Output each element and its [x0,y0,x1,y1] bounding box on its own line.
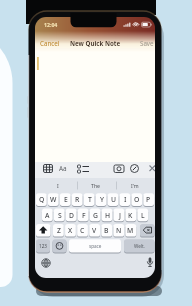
staticText: W [50,195,57,204]
button[interactable]: O [131,193,142,206]
button[interactable]: K [125,209,136,222]
staticText: F [82,211,86,220]
button[interactable]: F [78,209,89,222]
button[interactable]: S [54,209,65,222]
button[interactable]: B [101,224,112,237]
button[interactable]: G [90,209,101,222]
staticText: Save [140,39,154,47]
button[interactable]: E [60,193,71,206]
staticText: Welt. [134,243,145,249]
button[interactable]: H [102,209,113,222]
staticText: B [104,226,109,235]
button[interactable]: The [88,180,104,191]
button[interactable]: M [125,224,136,237]
staticText: M [127,226,134,235]
button[interactable]: Aa [56,163,70,174]
staticText: New Quick Note [70,39,121,47]
staticText: Aa [59,164,67,173]
button[interactable]: X [65,224,76,237]
button[interactable]: Cancel [38,38,62,48]
button[interactable]: L [137,209,148,222]
button[interactable]: T [84,193,95,206]
staticText: S [58,211,62,220]
staticText: Cancel [40,39,60,47]
staticText: R [75,195,80,204]
staticText: I [57,182,59,189]
button[interactable]: I [120,193,131,206]
staticText: H [105,211,111,220]
staticText: O [134,195,140,204]
staticText: C [80,226,85,235]
button[interactable]: I'm [127,180,143,191]
staticText: K [128,211,133,220]
button[interactable]: 123 [36,239,50,252]
staticText: J [119,211,121,220]
staticText: space [89,243,102,249]
staticText: X [68,226,73,235]
button[interactable]: I [50,180,66,191]
button[interactable]: D [66,209,77,222]
button[interactable]: Z [53,224,64,237]
button[interactable]: J [114,209,125,222]
button[interactable]: P [143,193,154,206]
button[interactable]: space [69,239,121,252]
button[interactable]: V [89,224,100,237]
staticText: G [93,211,98,220]
button[interactable]: Save [137,38,156,48]
staticText: The [91,182,101,189]
staticText: D [69,211,74,220]
staticText: 12:04 [44,21,58,28]
staticText: 123 [39,243,47,249]
staticText: I'm [131,182,139,189]
button[interactable]: N [113,224,124,237]
staticText: L [141,211,145,220]
button[interactable]: Y [96,193,107,206]
staticText: A [45,211,50,220]
staticText: P [146,195,151,204]
staticText: N [116,226,122,235]
button[interactable]: W [48,193,59,206]
button[interactable]: Welt. [124,239,155,252]
staticText: E [64,195,68,204]
staticText: V [92,226,97,235]
staticText: T [88,195,92,204]
staticText: Z [57,226,61,235]
button[interactable]: Q [36,193,47,206]
button[interactable]: C [77,224,88,237]
button[interactable]: R [72,193,83,206]
staticText: U [111,195,117,204]
button[interactable]: U [108,193,119,206]
staticText: I [124,195,127,204]
button[interactable]: A [42,209,53,222]
staticText: Y [100,195,104,204]
staticText: Q [39,195,45,204]
